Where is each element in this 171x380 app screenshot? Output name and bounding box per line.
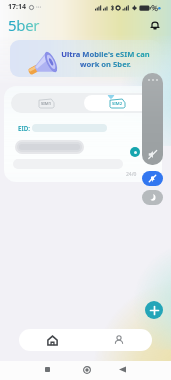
button[interactable]: Home	[19, 329, 85, 351]
staticText: EID:	[18, 124, 30, 132]
button[interactable]: Back	[119, 366, 126, 373]
button[interactable]: Ultra Mobile's eSIM can work on 5ber.	[10, 40, 161, 77]
button[interactable]: Do not disturb	[142, 190, 163, 205]
button[interactable]: Notifications	[147, 17, 163, 33]
button[interactable]: Recents	[45, 367, 50, 372]
button[interactable]: Silent mode	[142, 171, 163, 186]
staticText: 24/0	[126, 171, 137, 178]
staticText: 5ber	[8, 15, 40, 35]
staticText: Ultra Mobile's eSIM can work on 5ber.	[56, 49, 155, 69]
staticText: 17:14	[8, 2, 26, 12]
button[interactable]: Volume slider	[142, 73, 163, 165]
button[interactable]: Add eSIM	[145, 301, 163, 319]
staticText: SIM2	[112, 101, 123, 107]
button[interactable]: SIM2	[84, 95, 151, 111]
button[interactable]: Home	[83, 366, 91, 374]
staticText: SIM1	[41, 101, 52, 107]
button[interactable]: SIM1	[11, 93, 82, 113]
button[interactable]: Profile	[85, 329, 152, 351]
